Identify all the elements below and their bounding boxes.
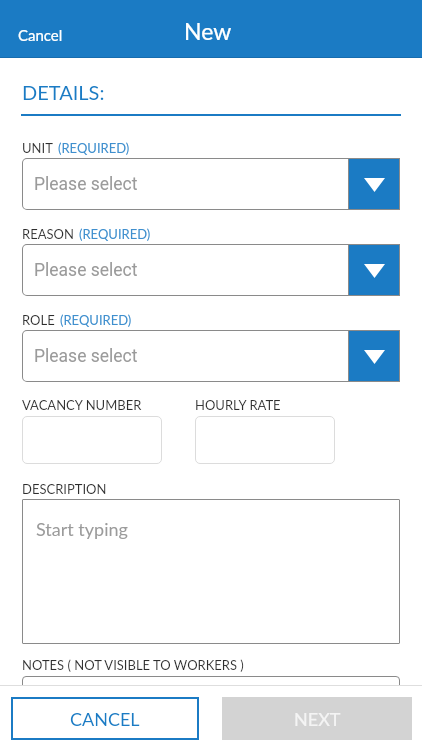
staticText: DESCRIPTION bbox=[22, 481, 107, 497]
button[interactable]: NEXT bbox=[222, 697, 412, 740]
staticText: Cancel bbox=[18, 26, 63, 44]
button[interactable]: Select role bbox=[22, 330, 400, 382]
button[interactable]: Hourly rate bbox=[195, 416, 335, 464]
staticText: NEXT bbox=[294, 708, 341, 730]
staticText: (REQUIRED) bbox=[60, 312, 132, 328]
staticText: New bbox=[184, 17, 232, 45]
button[interactable]: Cancel bbox=[0, 19, 81, 53]
staticText: Start typing bbox=[36, 518, 128, 540]
staticText: Please select bbox=[34, 174, 138, 195]
button[interactable]: Select unit bbox=[22, 158, 400, 210]
staticText: ROLE bbox=[22, 312, 55, 328]
button[interactable]: Description bbox=[22, 499, 400, 644]
staticText: HOURLY RATE bbox=[195, 397, 281, 413]
button[interactable]: Vacancy number bbox=[22, 416, 162, 464]
button[interactable]: Select reason bbox=[22, 244, 400, 296]
button[interactable]: Notes bbox=[22, 676, 400, 685]
staticText: Please select bbox=[34, 260, 138, 281]
staticText: Please select bbox=[34, 346, 138, 367]
staticText: (REQUIRED) bbox=[79, 226, 151, 242]
button[interactable]: CANCEL bbox=[11, 697, 199, 740]
staticText: CANCEL bbox=[70, 708, 140, 730]
staticText: NOTES ( NOT VISIBLE TO WORKERS ) bbox=[22, 657, 244, 673]
staticText: DETAILS: bbox=[22, 80, 105, 104]
staticText: REASON bbox=[22, 226, 74, 242]
staticText: (REQUIRED) bbox=[58, 140, 130, 156]
staticText: UNIT bbox=[22, 140, 53, 156]
staticText: VACANCY NUMBER bbox=[22, 397, 142, 413]
